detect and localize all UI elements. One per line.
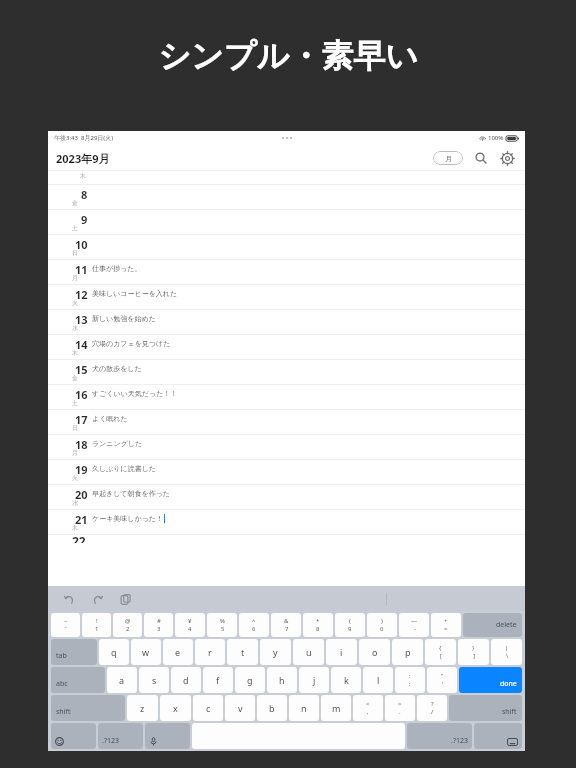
- button[interactable]: *: [303, 613, 333, 637]
- button[interactable]: (: [335, 613, 365, 637]
- button[interactable]: ?: [417, 695, 447, 721]
- button[interactable]: o: [359, 639, 390, 665]
- button[interactable]: b: [257, 695, 287, 721]
- button[interactable]: :: [395, 667, 425, 693]
- button[interactable]: u: [293, 639, 324, 665]
- staticText: よく眠れた: [92, 414, 128, 423]
- button[interactable]: abc: [51, 667, 105, 693]
- button[interactable]: }: [458, 639, 489, 665]
- button[interactable]: f: [203, 667, 233, 693]
- staticText: !: [96, 617, 98, 625]
- button[interactable]: Undo: [62, 592, 76, 606]
- button[interactable]: #: [144, 613, 173, 637]
- button[interactable]: 10: [48, 235, 525, 260]
- button[interactable]: m: [321, 695, 351, 721]
- staticText: |: [505, 644, 509, 652]
- staticText: .?123: [102, 736, 119, 746]
- button[interactable]: c: [193, 695, 223, 721]
- button[interactable]: 15: [48, 360, 525, 385]
- staticText: 16: [75, 387, 88, 402]
- button[interactable]: shift: [449, 695, 522, 721]
- button[interactable]: z: [127, 695, 158, 721]
- button[interactable]: 16: [48, 385, 525, 410]
- button[interactable]: r: [195, 639, 225, 665]
- button[interactable]: 18: [48, 435, 525, 460]
- button[interactable]: j: [299, 667, 329, 693]
- button[interactable]: 19: [48, 460, 525, 485]
- button[interactable]: n: [289, 695, 319, 721]
- button[interactable]: d: [171, 667, 201, 693]
- staticText: ^: [252, 617, 256, 625]
- button[interactable]: 月: [433, 151, 463, 165]
- button[interactable]: —: [399, 613, 429, 637]
- staticText: *: [316, 617, 320, 625]
- button[interactable]: p: [392, 639, 423, 665]
- staticText: .?123: [451, 736, 468, 746]
- button[interactable]: a: [107, 667, 137, 693]
- staticText: 水: [72, 324, 78, 332]
- button[interactable]: 21: [48, 510, 525, 535]
- button[interactable]: 20: [48, 485, 525, 510]
- button[interactable]: ¥: [175, 613, 205, 637]
- button[interactable]: Search: [473, 150, 489, 166]
- button[interactable]: +: [431, 613, 461, 637]
- button[interactable]: h: [267, 667, 297, 693]
- button[interactable]: Emoji: [51, 723, 96, 749]
- button[interactable]: w: [131, 639, 161, 665]
- button[interactable]: delete: [463, 613, 522, 637]
- button[interactable]: @: [113, 613, 142, 637]
- button[interactable]: done: [459, 667, 522, 693]
- button[interactable]: 14: [48, 335, 525, 360]
- button[interactable]: 17: [48, 410, 525, 435]
- button[interactable]: Redo: [90, 592, 104, 606]
- staticText: 22: [72, 533, 86, 543]
- staticText: tab: [56, 651, 67, 661]
- staticText: h: [279, 674, 285, 686]
- button[interactable]: 9: [48, 210, 525, 235]
- button[interactable]: q: [99, 639, 129, 665]
- button[interactable]: >: [385, 695, 415, 721]
- button[interactable]: {: [425, 639, 456, 665]
- button[interactable]: Paste: [118, 592, 132, 606]
- button[interactable]: .?123: [407, 723, 472, 749]
- button[interactable]: 12: [48, 285, 525, 310]
- staticText: i: [340, 646, 343, 658]
- button[interactable]: i: [326, 639, 357, 665]
- button[interactable]: ^: [239, 613, 269, 637]
- button[interactable]: Hide keyboard: [474, 723, 522, 749]
- button[interactable]: v: [225, 695, 255, 721]
- button[interactable]: 8: [48, 185, 525, 210]
- button[interactable]: .?123: [98, 723, 143, 749]
- button[interactable]: shift: [51, 695, 125, 721]
- staticText: 金: [72, 374, 78, 382]
- button[interactable]: |: [491, 639, 522, 665]
- button[interactable]: s: [139, 667, 169, 693]
- button[interactable]: &: [271, 613, 301, 637]
- button[interactable]: Settings: [499, 150, 515, 166]
- staticText: m: [332, 702, 341, 714]
- button[interactable]: 13: [48, 310, 525, 335]
- button[interactable]: tab: [51, 639, 97, 665]
- staticText: 早起きして朝食を作った: [92, 489, 170, 498]
- button[interactable]: ": [427, 667, 457, 693]
- staticText: —: [411, 617, 418, 625]
- button[interactable]: ): [367, 613, 397, 637]
- button[interactable]: !: [82, 613, 111, 637]
- button[interactable]: Dictation: [145, 723, 190, 749]
- button[interactable]: x: [160, 695, 191, 721]
- button[interactable]: y: [260, 639, 291, 665]
- button[interactable]: 11: [48, 260, 525, 285]
- button[interactable]: e: [163, 639, 193, 665]
- button[interactable]: k: [331, 667, 361, 693]
- button[interactable]: t: [227, 639, 258, 665]
- staticText: すごくいい天気だった！！: [92, 389, 178, 398]
- button[interactable]: <: [353, 695, 383, 721]
- button[interactable]: ~: [51, 613, 80, 637]
- staticText: z: [140, 702, 145, 714]
- staticText: ]: [473, 652, 475, 660]
- button[interactable]: %: [207, 613, 237, 637]
- button[interactable]: l: [363, 667, 393, 693]
- staticText: v: [238, 702, 243, 714]
- button[interactable]: g: [235, 667, 265, 693]
